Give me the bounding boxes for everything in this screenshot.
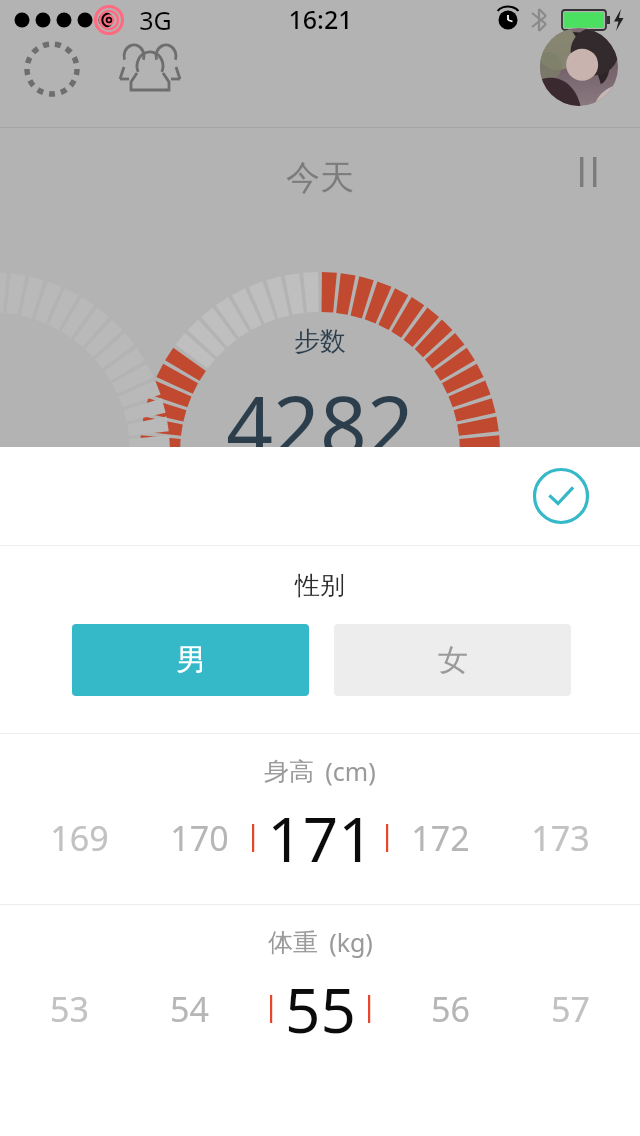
staticText: 性别 — [295, 570, 345, 601]
staticText: (cm) — [325, 754, 376, 788]
staticText: (kg) — [329, 925, 373, 959]
staticText: 今天 — [286, 156, 354, 199]
staticText: 男 — [176, 641, 206, 679]
staticText: 4282 — [226, 368, 414, 480]
button[interactable]: 169 — [0, 790, 640, 886]
staticText: 173 — [531, 815, 590, 861]
staticText: 170 — [170, 815, 229, 861]
staticText: 体重 — [268, 927, 318, 958]
staticText: 56 — [431, 986, 470, 1032]
staticText: 步数 — [294, 325, 346, 358]
button[interactable]: Profile — [540, 28, 618, 106]
button[interactable]: 53 — [0, 961, 640, 1057]
button[interactable]: 男 — [72, 624, 309, 696]
button[interactable]: Activity — [18, 35, 86, 103]
staticText: 171 — [267, 796, 374, 880]
staticText: 女 — [438, 641, 468, 679]
staticText: 57 — [551, 986, 590, 1032]
staticText: 3G — [139, 3, 172, 37]
button[interactable]: 女 — [334, 624, 571, 696]
staticText: 身高 — [264, 756, 314, 787]
staticText: 16:21 — [288, 2, 353, 36]
staticText: 172 — [411, 815, 470, 861]
button[interactable]: Pause — [566, 148, 614, 196]
staticText: 54 — [170, 986, 209, 1032]
button[interactable]: Confirm — [533, 468, 589, 524]
staticText: 53 — [50, 986, 89, 1032]
staticText: 55 — [285, 967, 356, 1051]
button[interactable]: Friends — [114, 33, 186, 105]
staticText: 169 — [50, 815, 109, 861]
